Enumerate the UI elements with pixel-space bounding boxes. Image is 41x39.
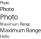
- staticText: Maximum Range: [0, 21, 30, 26]
- staticText: Photo: [0, 0, 9, 5]
- staticText: Maximum Range: [0, 27, 41, 34]
- staticText: Photo: [0, 5, 14, 12]
- staticText: Hello: [0, 34, 9, 39]
- staticText: Photo: [0, 12, 18, 21]
